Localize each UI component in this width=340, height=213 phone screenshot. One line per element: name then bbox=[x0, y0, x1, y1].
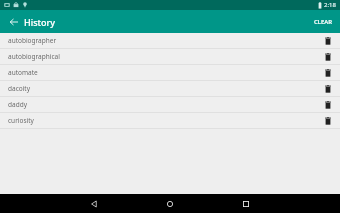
staticText: CLEAR bbox=[314, 18, 333, 26]
button[interactable]: Back bbox=[6, 14, 22, 30]
button[interactable]: Delete curiosity bbox=[322, 115, 334, 127]
button[interactable]: dacoity bbox=[0, 81, 340, 96]
button[interactable]: Delete automate bbox=[322, 67, 334, 79]
button[interactable]: Delete daddy bbox=[322, 99, 334, 111]
button[interactable]: CLEAR bbox=[310, 15, 337, 29]
staticText: dacoity bbox=[8, 84, 31, 93]
staticText: curiosity bbox=[8, 116, 34, 125]
button[interactable]: Delete autobiographer bbox=[322, 35, 334, 47]
staticText: autobiographical bbox=[8, 52, 60, 61]
button[interactable]: autobiographer bbox=[0, 33, 340, 48]
staticText: History bbox=[24, 16, 56, 28]
button[interactable]: Home bbox=[132, 194, 208, 213]
button[interactable]: autobiographical bbox=[0, 49, 340, 64]
button[interactable]: Recent apps bbox=[208, 194, 284, 213]
button[interactable]: Back bbox=[56, 194, 132, 213]
button[interactable]: curiosity bbox=[0, 113, 340, 128]
button[interactable]: daddy bbox=[0, 97, 340, 112]
staticText: automate bbox=[8, 68, 38, 77]
staticText: 2:18 bbox=[324, 1, 336, 9]
staticText: autobiographer bbox=[8, 36, 57, 45]
button[interactable]: automate bbox=[0, 65, 340, 80]
button[interactable]: Delete dacoity bbox=[322, 83, 334, 95]
button[interactable]: Delete autobiographical bbox=[322, 51, 334, 63]
staticText: daddy bbox=[8, 100, 27, 109]
